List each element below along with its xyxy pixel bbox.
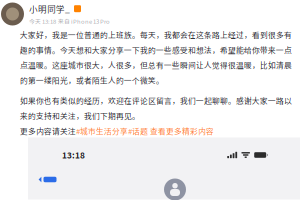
button[interactable]: #城市生活分享#话题 查看更多精彩内容	[76, 125, 214, 136]
button[interactable]: 小明同学_	[29, 2, 70, 15]
staticText: 更多内容请关注	[20, 125, 76, 136]
button[interactable]: Profile photo	[1, 2, 24, 25]
staticText: 小明同学_	[29, 2, 70, 15]
button[interactable]: Back to previous app	[38, 176, 56, 183]
staticText: 大家好，我是一位普通的上班族。每天，我都会在这条路上经过，看到很多有趣的事情。今…	[20, 29, 292, 86]
staticText: 13:18	[62, 149, 85, 161]
staticText: 如果你也有类似的经历，欢迎在评论区留言，我们一起聊聊。感谢大家一路以来的支持和关…	[20, 95, 292, 121]
staticText: 今天 13:18 来自 iPhone 13 Pro	[29, 17, 110, 25]
staticText: #城市生活分享#话题 查看更多精彩内容	[76, 125, 214, 136]
